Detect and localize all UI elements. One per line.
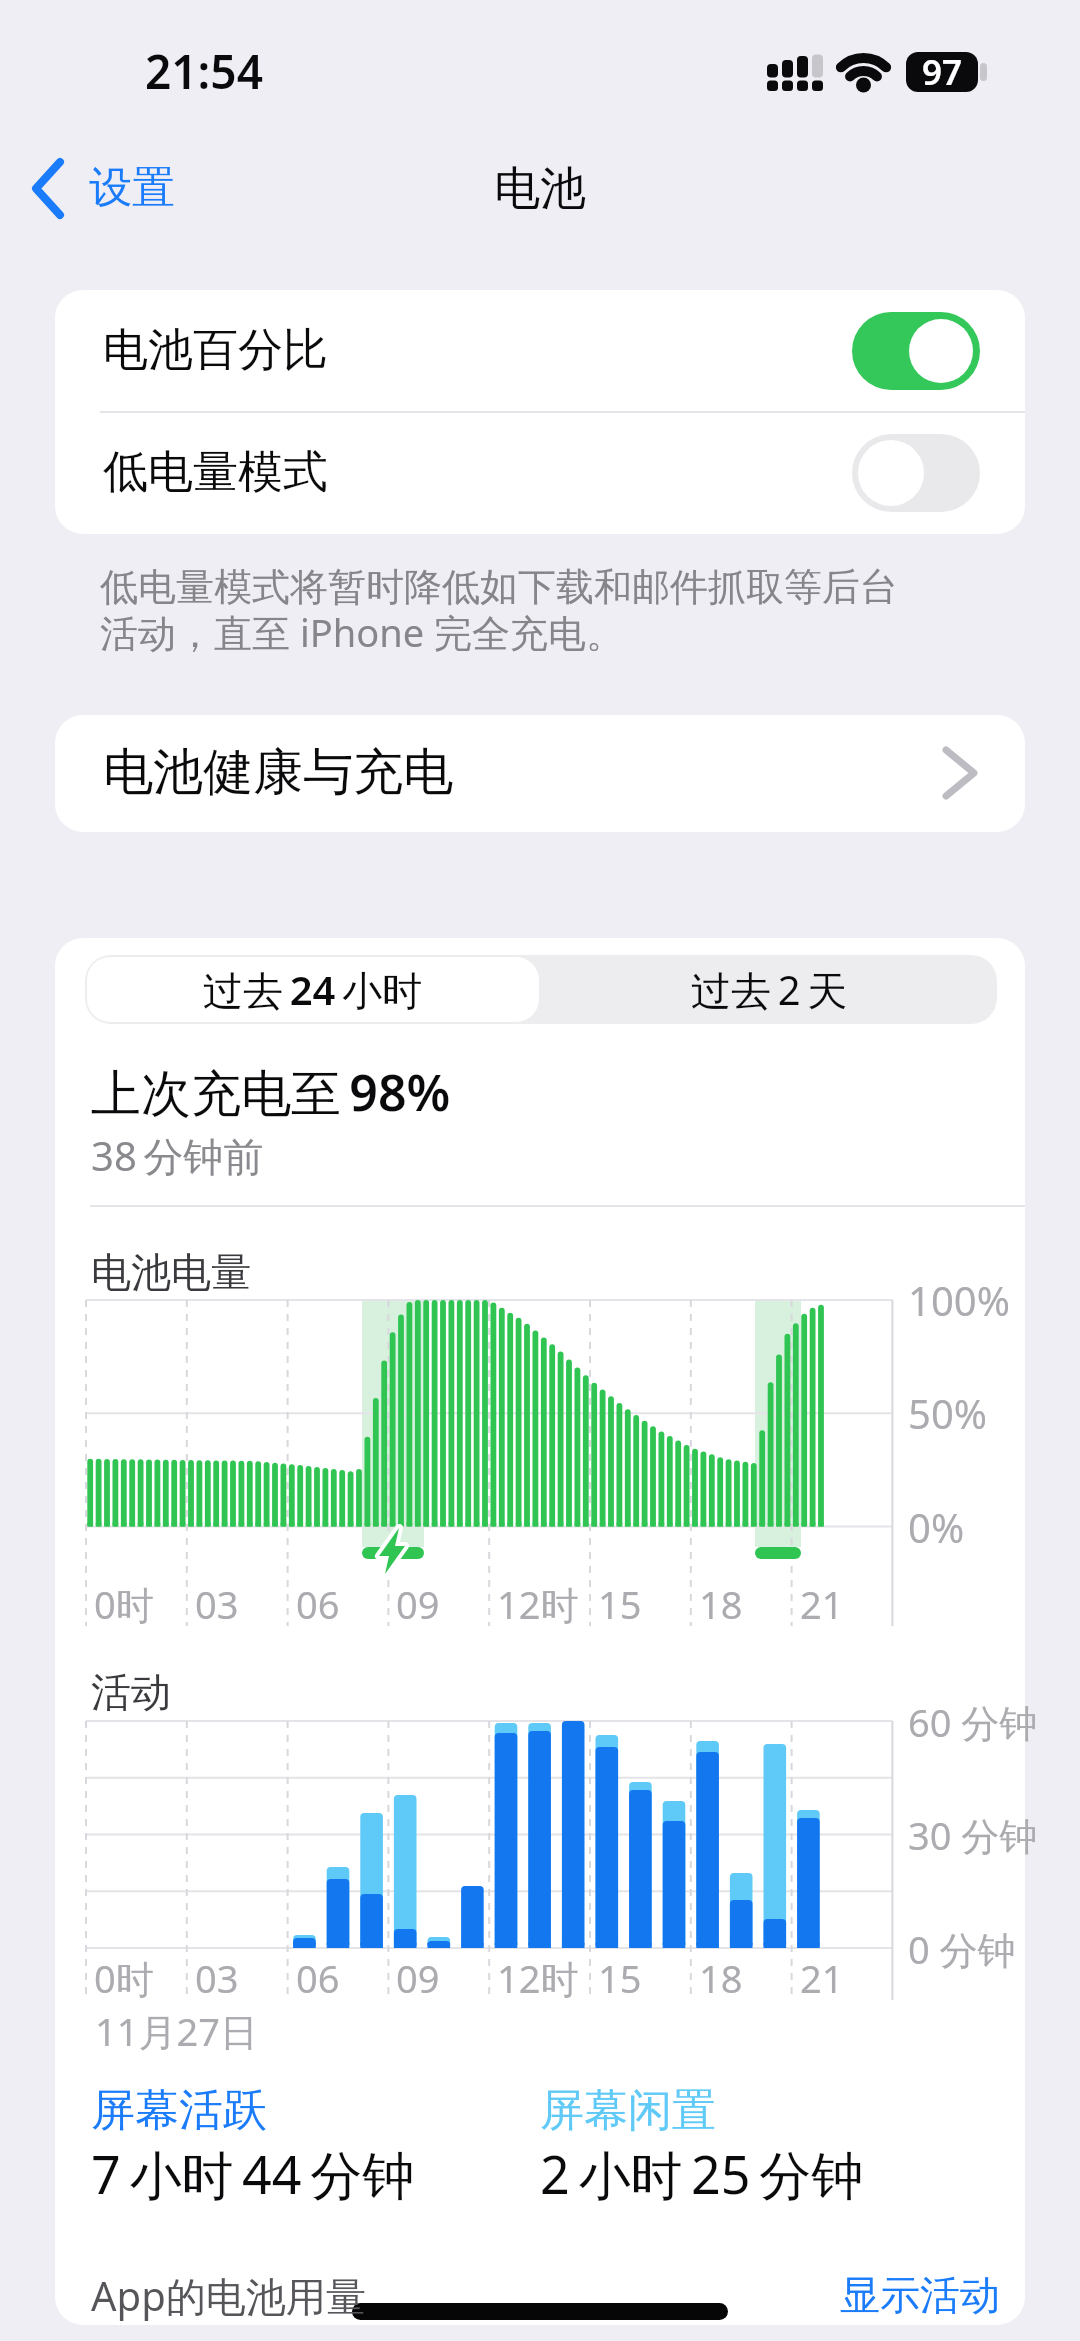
staticText: 0时: [94, 1952, 154, 2004]
staticText: 03: [195, 1578, 239, 1630]
staticText: 15: [598, 1578, 642, 1630]
staticText: 12时: [497, 1578, 579, 1630]
staticText: 03: [195, 1952, 239, 2004]
staticText: 15: [598, 1952, 642, 2004]
staticText: 50%: [908, 1386, 987, 1440]
button[interactable]: [852, 312, 980, 390]
staticText: 屏幕活跃: [91, 2083, 267, 2138]
button[interactable]: [820, 2265, 1020, 2325]
staticText: 活动: [91, 1667, 171, 1717]
staticText: 屏幕闲置: [540, 2083, 716, 2138]
button[interactable]: [55, 412, 1025, 534]
staticText: 电池: [494, 160, 586, 218]
button[interactable]: [30, 160, 190, 220]
button[interactable]: [541, 957, 995, 1022]
staticText: 21: [800, 1578, 844, 1630]
staticText: 电池健康与充电: [103, 741, 453, 804]
staticText: 30 分钟: [908, 1809, 1038, 1861]
staticText: 2 小时 25 分钟: [540, 2138, 864, 2209]
staticText: 0 分钟: [908, 1923, 1016, 1975]
button[interactable]: [87, 957, 539, 1022]
staticText: 低电量模式将暂时降低如下载和邮件抓取等后台: [100, 563, 898, 611]
staticText: 09: [396, 1578, 440, 1630]
staticText: 过去 24 小时: [203, 962, 423, 1017]
staticText: 7 小时 44 分钟: [91, 2138, 415, 2209]
button[interactable]: [55, 290, 1025, 412]
staticText: App的电池用量: [91, 2268, 366, 2323]
staticText: 0%: [908, 1500, 965, 1554]
staticText: 21:54: [145, 40, 263, 103]
staticText: 显示活动: [840, 2270, 1000, 2320]
staticText: 06: [296, 1952, 340, 2004]
staticText: 09: [396, 1952, 440, 2004]
staticText: 12时: [497, 1952, 579, 2004]
staticText: 过去 2 天: [691, 962, 848, 1017]
staticText: 电池电量: [91, 1247, 251, 1297]
staticText: 38 分钟前: [91, 1128, 264, 1183]
button[interactable]: [55, 715, 1025, 832]
staticText: 18: [699, 1578, 743, 1630]
staticText: 上次充电至 98%: [91, 1058, 451, 1126]
staticText: 活动，直至 iPhone 完全充电。: [100, 606, 624, 658]
staticText: 18: [699, 1952, 743, 2004]
staticText: 06: [296, 1578, 340, 1630]
staticText: 60 分钟: [908, 1696, 1038, 1748]
staticText: 97: [922, 48, 963, 96]
staticText: 21: [800, 1952, 844, 2004]
staticText: 低电量模式: [103, 444, 328, 501]
staticText: 设置: [89, 161, 175, 215]
staticText: 100%: [908, 1273, 1010, 1327]
staticText: 11月27日: [95, 2005, 258, 2057]
staticText: 0时: [94, 1578, 154, 1630]
staticText: 电池百分比: [103, 322, 328, 379]
button[interactable]: [852, 434, 980, 512]
